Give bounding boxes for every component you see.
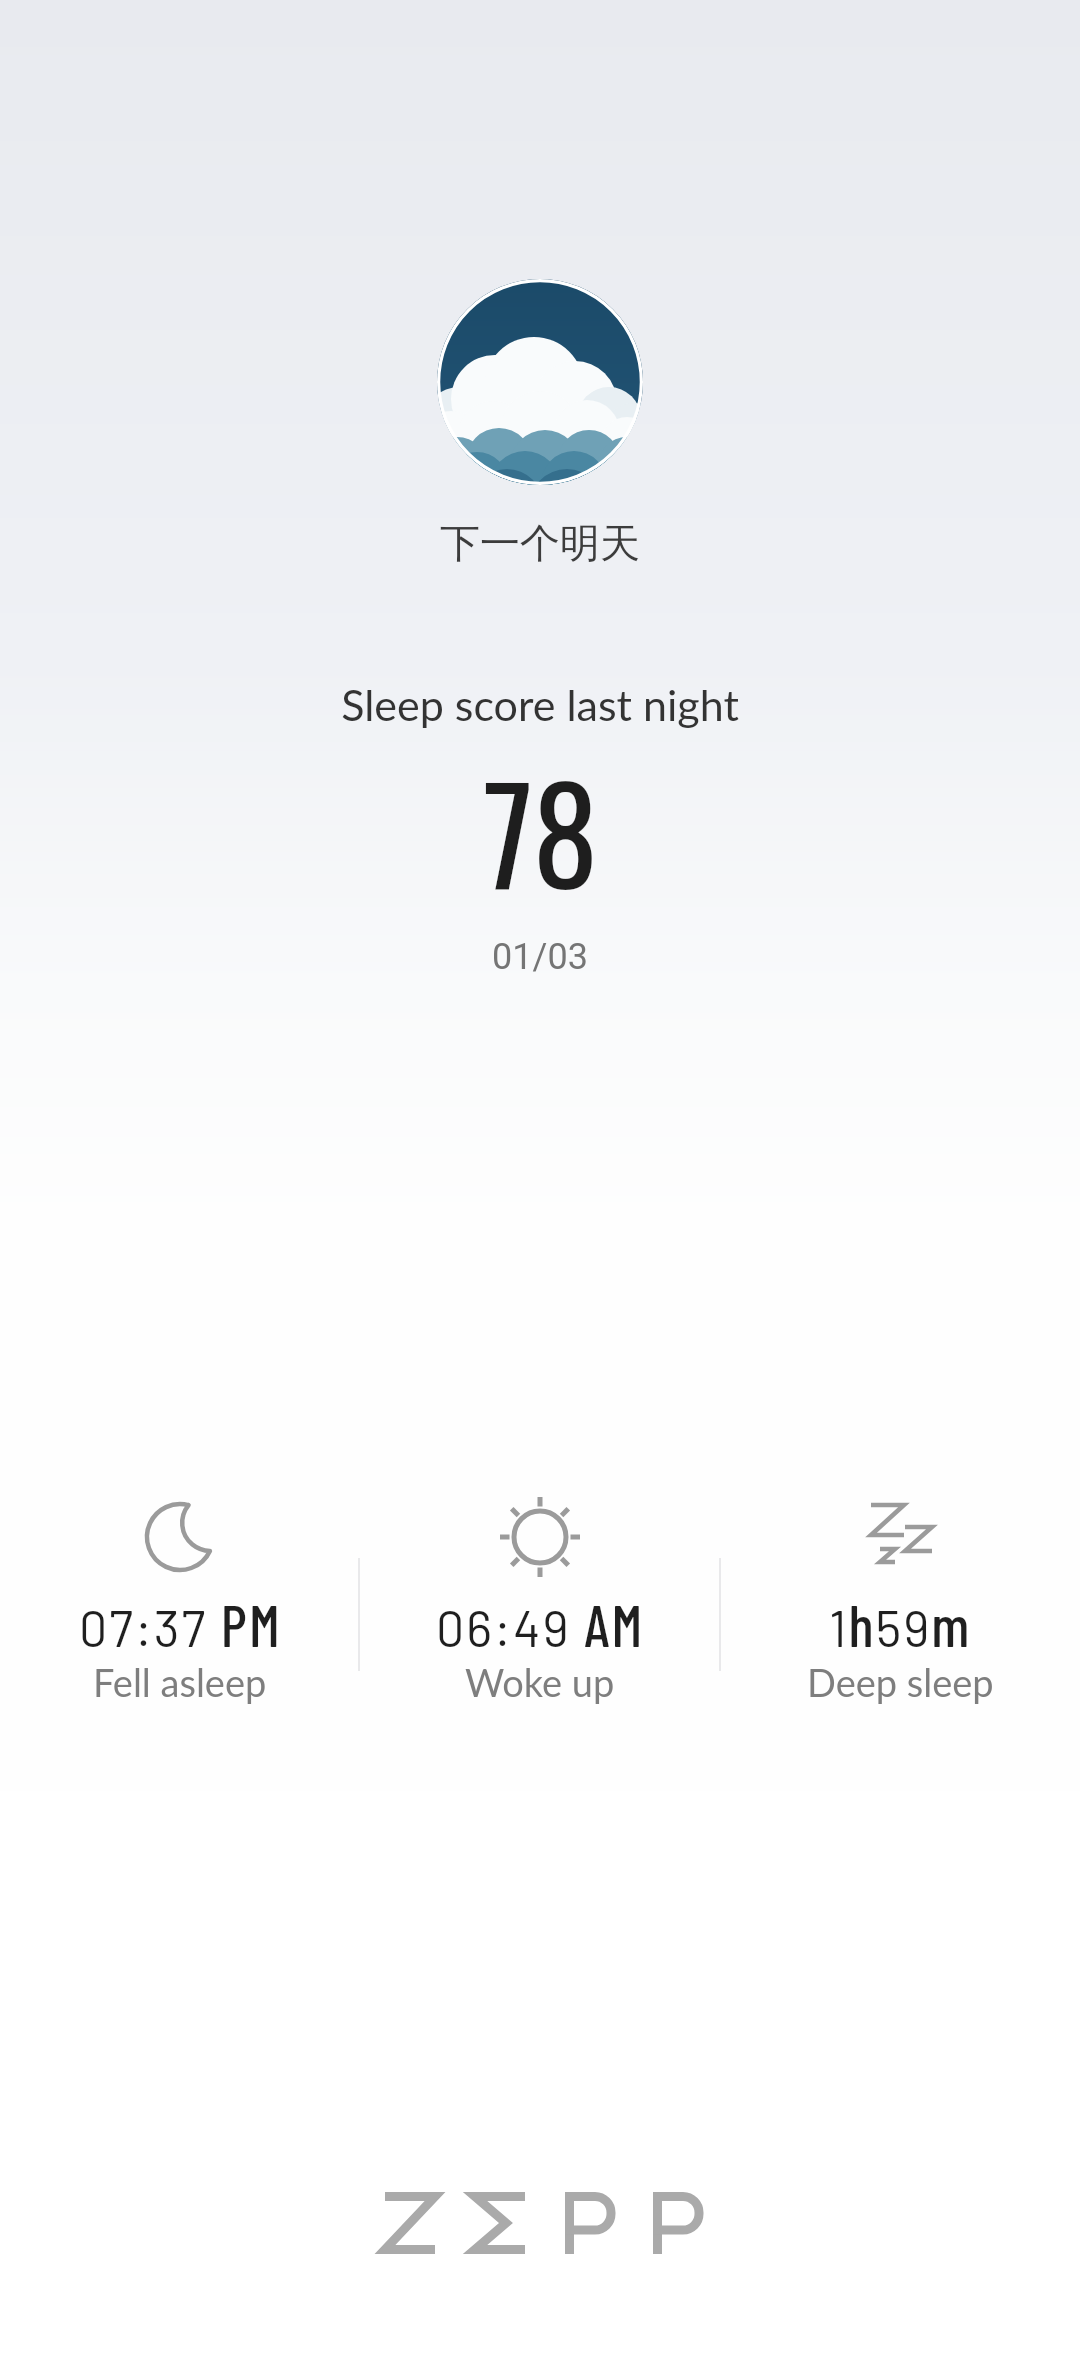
staticText: 78 [483,732,597,928]
staticText: Woke up [465,1659,615,1705]
staticText: 06:49 AM [436,1589,645,1659]
button[interactable]: 07:37 PM [0,1497,360,1705]
staticText: Fell asleep [93,1659,267,1705]
staticText: 1h59m [829,1589,972,1659]
button[interactable]: 06:49 AM [360,1497,720,1705]
button[interactable]: 1h59m [720,1497,1080,1705]
staticText: 下一个明天 [440,518,640,568]
button[interactable] [437,279,643,485]
staticText: 01/03 [492,936,588,978]
staticText: Deep sleep [807,1659,994,1705]
staticText: 07:37 PM [79,1589,282,1659]
staticText: Sleep score last night [341,679,739,731]
